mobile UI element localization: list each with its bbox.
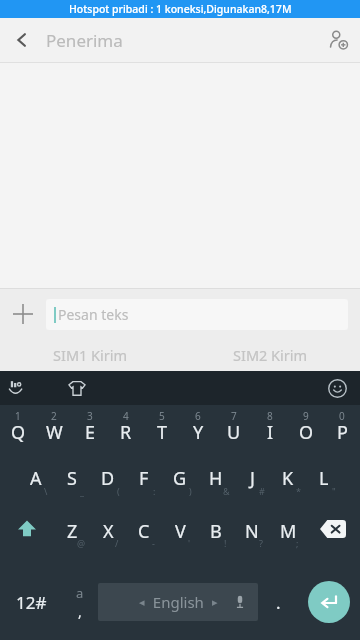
button[interactable]: 1 — [0, 405, 36, 458]
button[interactable]: B — [198, 511, 234, 564]
staticText: R — [120, 420, 132, 445]
button[interactable]: Add recipient — [316, 18, 360, 62]
staticText: 8 — [267, 409, 273, 423]
staticText: F — [139, 466, 149, 491]
button[interactable]: Theme — [60, 371, 94, 405]
button[interactable]: Z — [54, 511, 90, 564]
button[interactable]: 7 — [216, 405, 252, 458]
button[interactable]: X — [90, 511, 126, 564]
staticText: ; — [296, 537, 299, 549]
button[interactable]: D — [90, 458, 126, 511]
staticText: A — [30, 466, 42, 491]
button[interactable]: J — [234, 458, 270, 511]
button[interactable]: C — [126, 511, 162, 564]
button[interactable]: F — [126, 458, 162, 511]
button[interactable]: Pesan teks — [46, 299, 348, 330]
staticText: U — [227, 420, 241, 445]
staticText: P — [337, 420, 348, 445]
staticText: SIM2 Kirim — [233, 345, 308, 365]
staticText: 0 — [339, 409, 345, 423]
staticText: ? — [259, 537, 263, 549]
staticText: H — [209, 466, 223, 491]
button[interactable]: V — [162, 511, 198, 564]
button[interactable]: K — [270, 458, 306, 511]
staticText: 1 — [15, 409, 21, 423]
button[interactable]: 3 — [72, 405, 108, 458]
button[interactable]: M — [270, 511, 306, 564]
staticText: N — [245, 519, 259, 544]
staticText: - — [152, 537, 155, 549]
button[interactable]: 6 — [180, 405, 216, 458]
staticText: \ — [44, 485, 48, 497]
staticText: : — [153, 485, 156, 497]
staticText: T — [157, 420, 168, 445]
button[interactable]: H — [198, 458, 234, 511]
staticText: 7 — [231, 409, 237, 423]
button[interactable]: 5 — [144, 405, 180, 458]
staticText: M — [280, 519, 297, 544]
staticText: ▸ — [212, 596, 218, 609]
staticText: I — [267, 420, 274, 445]
button[interactable]: Emoji — [320, 371, 354, 405]
staticText: C — [138, 519, 150, 544]
staticText: / — [115, 537, 119, 549]
staticText: Z — [67, 519, 78, 544]
staticText: English — [145, 592, 212, 612]
button[interactable]: 12# — [0, 564, 62, 640]
button[interactable]: Shift — [0, 511, 54, 564]
button[interactable]: ◂ — [98, 583, 258, 621]
button[interactable]: . — [258, 564, 298, 640]
button[interactable]: A — [18, 458, 54, 511]
staticText: a — [76, 584, 84, 602]
staticText: . — [276, 591, 281, 614]
staticText: SIM1 Kirim — [53, 345, 128, 365]
staticText: _ — [80, 485, 84, 497]
button[interactable]: SIM2 Kirim — [180, 339, 360, 371]
staticText: X — [103, 519, 114, 544]
button[interactable]: Back — [0, 18, 44, 62]
staticText: ◂ — [139, 596, 145, 609]
staticText: @ — [77, 537, 86, 549]
staticText: D — [101, 466, 115, 491]
button[interactable]: SIM1 Kirim — [0, 339, 180, 371]
button[interactable]: G — [162, 458, 198, 511]
staticText: Q — [11, 420, 26, 445]
staticText: 4 — [123, 409, 129, 423]
button[interactable]: L — [306, 458, 342, 511]
staticText: O — [299, 420, 314, 445]
staticText: ) — [189, 485, 192, 497]
staticText: Pesan teks — [58, 305, 129, 324]
button[interactable]: 8 — [252, 405, 288, 458]
staticText: S — [67, 466, 77, 491]
staticText: V — [175, 519, 186, 544]
staticText: B — [210, 519, 222, 544]
button[interactable]: N — [234, 511, 270, 564]
staticText: 5 — [159, 409, 165, 423]
button[interactable]: 9 — [288, 405, 324, 458]
staticText: 12# — [16, 591, 47, 614]
staticText: ( — [117, 485, 120, 497]
button[interactable]: Handwriting — [0, 371, 34, 405]
staticText: 6 — [195, 409, 201, 423]
button[interactable]: Symbols — [62, 564, 98, 640]
button[interactable]: Backspace — [306, 511, 360, 564]
staticText: * — [296, 485, 301, 497]
staticText: 3 — [87, 409, 93, 423]
staticText: , — [78, 602, 82, 621]
button[interactable]: 0 — [324, 405, 360, 458]
staticText: 9 — [303, 409, 309, 423]
button[interactable]: Voice input — [230, 592, 250, 612]
staticText: K — [282, 466, 294, 491]
button[interactable]: Enter — [298, 564, 360, 640]
staticText: ' — [188, 537, 191, 549]
button[interactable]: S — [54, 458, 90, 511]
staticText: J — [250, 466, 255, 491]
staticText: Hotspot pribadi : 1 koneksi,Digunakan8,1… — [69, 2, 292, 16]
button[interactable]: 4 — [108, 405, 144, 458]
staticText: 2 — [51, 409, 57, 423]
staticText: # — [259, 485, 265, 497]
staticText: L — [319, 466, 329, 491]
button[interactable]: 2 — [36, 405, 72, 458]
staticText: & — [223, 485, 230, 497]
button[interactable]: Attach — [0, 291, 46, 337]
